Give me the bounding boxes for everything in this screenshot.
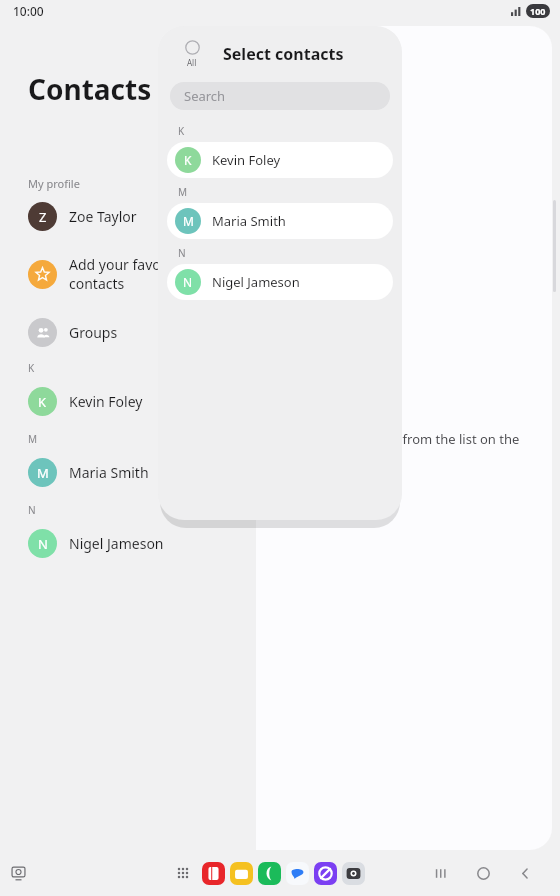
button[interactable]: Recents panel [5,860,31,886]
button[interactable]: App [314,862,337,885]
staticText: Groups [69,323,118,342]
button[interactable]: K [167,142,393,178]
button[interactable]: K [0,378,560,424]
button[interactable]: M [0,449,560,495]
staticText: Nigel Jameson [69,534,164,553]
staticText: K [38,393,47,411]
staticText: Nigel Jameson [212,273,300,291]
button[interactable]: App [202,862,225,885]
button[interactable]: App [258,862,281,885]
staticText: K [28,361,35,375]
staticText: My profile [28,176,80,191]
button[interactable]: Back [504,857,546,889]
staticText: Select contacts [223,43,344,65]
staticText: N [28,503,36,517]
button[interactable]: Z [0,193,560,239]
button[interactable]: Home [462,857,504,889]
button[interactable]: Search [170,82,390,110]
staticText: Contacts [28,70,152,108]
staticText: M [28,432,38,446]
button[interactable]: N [0,520,560,566]
staticText: Maria Smith [69,463,149,482]
button[interactable]: M [167,203,393,239]
button[interactable]: App [286,862,309,885]
staticText: 100 [530,5,546,17]
button[interactable]: Apps [170,860,196,886]
button[interactable]: Add your favourite contacts [0,247,560,301]
staticText: All [187,57,197,68]
staticText: M [37,464,49,482]
staticText: K [178,124,185,138]
button[interactable]: Groups [0,309,560,355]
staticText: M [178,185,188,199]
staticText: Kevin Foley [212,151,281,169]
staticText: Maria Smith [212,212,286,230]
staticText: K [184,152,192,168]
staticText: 10:00 [13,3,44,19]
staticText: Search [184,87,226,105]
staticText: Select a contact from the list on the le… [304,430,520,468]
button[interactable]: N [167,264,393,300]
button[interactable]: Select all [175,40,209,68]
staticText: N [178,246,186,260]
staticText: Zoe Taylor [69,207,137,226]
staticText: Kevin Foley [69,392,143,411]
staticText: N [183,274,193,290]
staticText: Add your favourite contacts [69,255,192,293]
button[interactable]: Recents [420,857,462,889]
button[interactable]: App [230,862,253,885]
staticText: N [38,535,48,553]
staticText: M [183,213,194,229]
button[interactable]: App [342,862,365,885]
staticText: Z [39,208,47,226]
